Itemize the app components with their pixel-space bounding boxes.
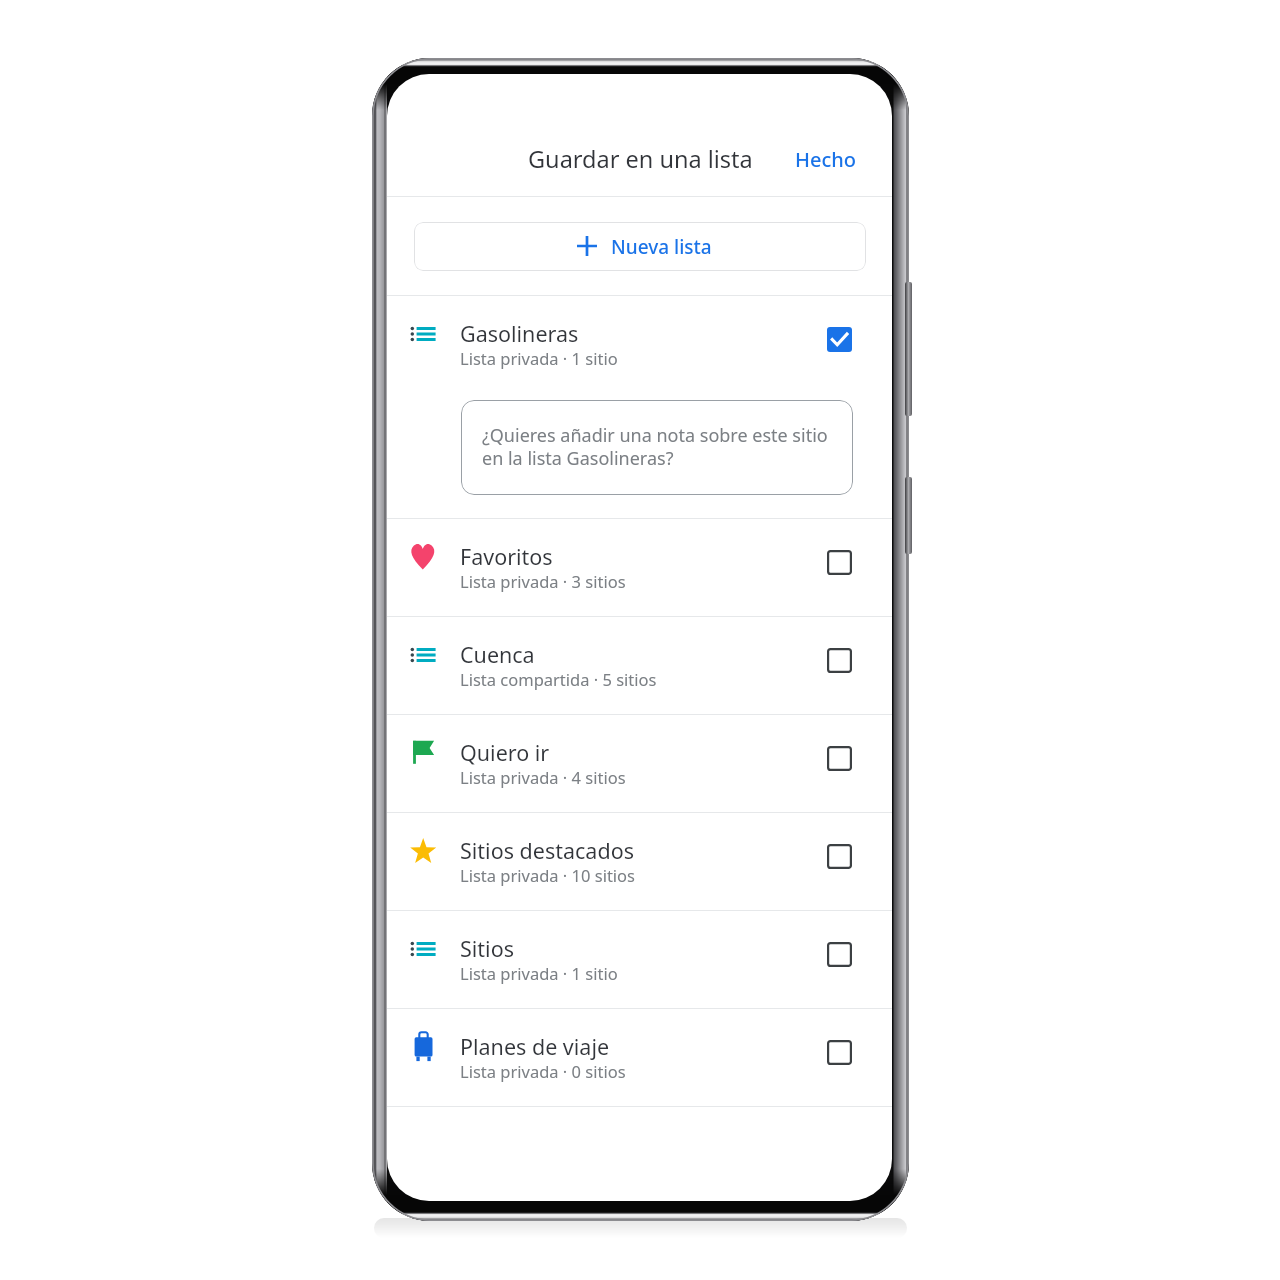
staticText: Sitios — [460, 934, 514, 963]
staticText: Lista compartida · 5 sitios — [460, 668, 657, 690]
staticText: Hecho — [795, 146, 857, 173]
button[interactable]: ¿Quieres añadir una nota sobre este siti… — [461, 400, 853, 495]
button[interactable]: Sitios destacados — [387, 813, 892, 910]
button[interactable]: Gasolineras — [387, 296, 892, 393]
staticText: Lista privada · 0 sitios — [460, 1060, 626, 1082]
button[interactable]: Sitios — [387, 911, 892, 1008]
staticText: Guardar en una lista — [528, 143, 753, 175]
button[interactable]: Nueva lista — [414, 222, 866, 271]
staticText: ¿Quieres añadir una nota sobre este siti… — [482, 423, 834, 470]
button[interactable]: Cuenca — [387, 617, 892, 714]
button[interactable]: Seleccionar Favoritos — [819, 542, 859, 582]
button[interactable]: Quiero ir — [387, 715, 892, 812]
staticText: Quiero ir — [460, 738, 550, 767]
staticText: Lista privada · 1 sitio — [460, 347, 618, 369]
button[interactable]: Planes de viaje — [387, 1009, 892, 1106]
staticText: Lista privada · 3 sitios — [460, 570, 626, 592]
staticText: Lista privada · 1 sitio — [460, 962, 618, 984]
button[interactable]: Seleccionar Gasolineras — [819, 319, 859, 359]
staticText: Lista privada · 4 sitios — [460, 766, 626, 788]
staticText: Nueva lista — [611, 234, 712, 260]
staticText: Cuenca — [460, 640, 535, 669]
button[interactable]: Seleccionar Sitios — [819, 934, 859, 974]
staticText: Sitios destacados — [460, 836, 634, 865]
staticText: Favoritos — [460, 542, 553, 571]
button[interactable]: Seleccionar Quiero ir — [819, 738, 859, 778]
button[interactable]: Seleccionar Cuenca — [819, 640, 859, 680]
button[interactable]: Seleccionar Planes de viaje — [819, 1032, 859, 1072]
button[interactable]: Seleccionar Sitios destacados — [819, 836, 859, 876]
staticText: Gasolineras — [460, 319, 579, 348]
staticText: Planes de viaje — [460, 1032, 610, 1061]
button[interactable]: Favoritos — [387, 519, 892, 616]
staticText: Lista privada · 10 sitios — [460, 864, 635, 886]
button[interactable]: Hecho — [786, 138, 866, 181]
